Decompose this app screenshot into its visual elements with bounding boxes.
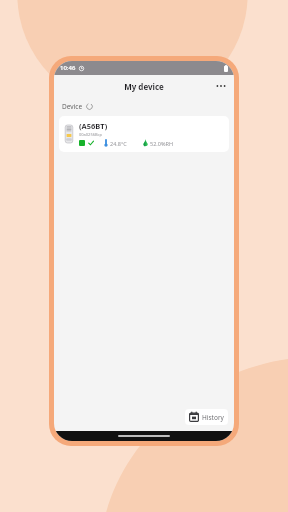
staticText: My device [124, 81, 164, 92]
staticText: 10:46 [60, 64, 76, 72]
button[interactable]: More options [213, 78, 229, 94]
button[interactable]: (A56BT) [59, 116, 229, 152]
staticText: 52.0%RH [150, 140, 173, 147]
staticText: 24.8°C [110, 140, 127, 147]
staticText: History [202, 413, 224, 422]
button[interactable]: History [185, 409, 228, 425]
staticText: 00a0256Bcp [79, 132, 102, 137]
staticText: Device [62, 102, 83, 111]
staticText: (A56BT) [79, 121, 108, 131]
